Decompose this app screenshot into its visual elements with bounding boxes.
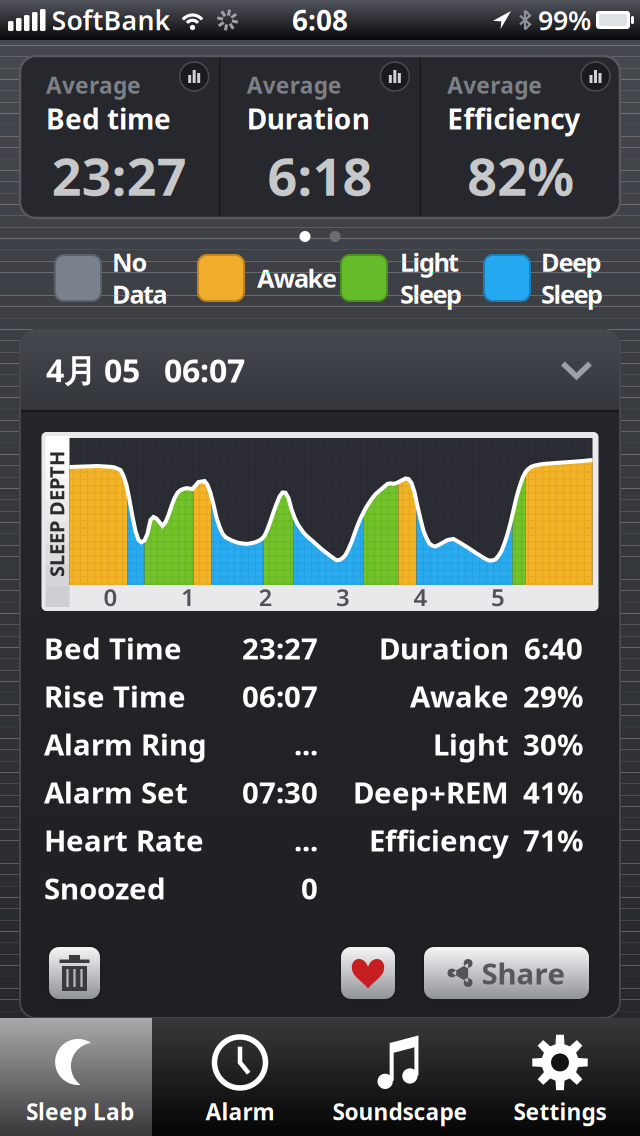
staticText: 4月 05 06:07 [46, 349, 245, 391]
staticText: Bed Time [44, 628, 182, 667]
staticText: 06:07 [242, 676, 318, 715]
staticText: Settings [513, 1096, 606, 1126]
staticText: Efficiency [369, 820, 509, 859]
staticText: 29% [523, 676, 583, 715]
button[interactable]: Alarm [160, 1018, 320, 1136]
button[interactable]: Collapse day 4月 05 [20, 330, 620, 410]
staticText: Snoozed [44, 868, 166, 907]
staticText: 4 [413, 581, 427, 613]
staticText: Duration [247, 100, 370, 137]
button[interactable]: Statistics [180, 62, 209, 91]
staticText: Bed time [46, 100, 171, 137]
staticText: 07:30 [242, 772, 318, 811]
staticText: Alarm Set [44, 772, 188, 811]
button[interactable]: Settings [480, 1018, 640, 1136]
staticText: 41% [523, 772, 583, 811]
staticText: Sleep [541, 277, 603, 311]
staticText: Deep+REM [353, 772, 509, 811]
staticText: SLEEP DEPTH [0, 501, 119, 527]
button[interactable]: Statistics [581, 62, 610, 91]
staticText: ... [294, 724, 318, 763]
staticText: SoftBank [51, 2, 170, 38]
staticText: Sleep [400, 277, 462, 311]
staticText: Sleep Lab [26, 1096, 134, 1126]
staticText: Share [481, 953, 565, 992]
staticText: 82% [467, 141, 574, 210]
staticText: 1 [181, 581, 195, 613]
staticText: 30% [523, 724, 583, 763]
button[interactable]: Soundscape [320, 1018, 480, 1136]
staticText: Heart Rate [44, 820, 204, 859]
staticText: 0 [103, 581, 117, 613]
staticText: Duration [379, 628, 509, 667]
staticText: 6:40 [524, 628, 583, 667]
staticText: 0 [301, 868, 318, 907]
staticText: 6:18 [267, 141, 372, 210]
button[interactable]: Statistics [380, 62, 409, 91]
staticText: 99% [538, 2, 591, 38]
staticText: 5 [491, 581, 505, 613]
button[interactable]: Sleep Lab [0, 1018, 160, 1136]
staticText: Awake [410, 676, 509, 715]
staticText: Rise Time [44, 676, 186, 715]
staticText: Average [447, 70, 542, 100]
button[interactable]: Favorite [340, 946, 396, 1000]
staticText: 71% [523, 820, 583, 859]
staticText: Alarm [205, 1096, 274, 1126]
staticText: Light [433, 724, 509, 763]
staticText: Awake [257, 261, 337, 295]
staticText: No [112, 245, 147, 279]
staticText: ... [294, 820, 318, 859]
staticText: Average [46, 70, 141, 100]
staticText: Average [247, 70, 342, 100]
staticText: Data [112, 277, 167, 311]
staticText: 6:08 [292, 1, 348, 39]
button[interactable]: Delete [48, 946, 101, 1000]
staticText: 23:27 [242, 628, 318, 667]
staticText: Deep [541, 245, 601, 279]
staticText: Light [400, 245, 459, 279]
staticText: Efficiency [447, 100, 580, 137]
staticText: 2 [258, 581, 272, 613]
staticText: Soundscape [332, 1096, 467, 1126]
staticText: 23:27 [52, 141, 187, 210]
staticText: Alarm Ring [44, 724, 207, 763]
button[interactable]: Share [423, 946, 590, 1000]
staticText: 3 [336, 581, 350, 613]
